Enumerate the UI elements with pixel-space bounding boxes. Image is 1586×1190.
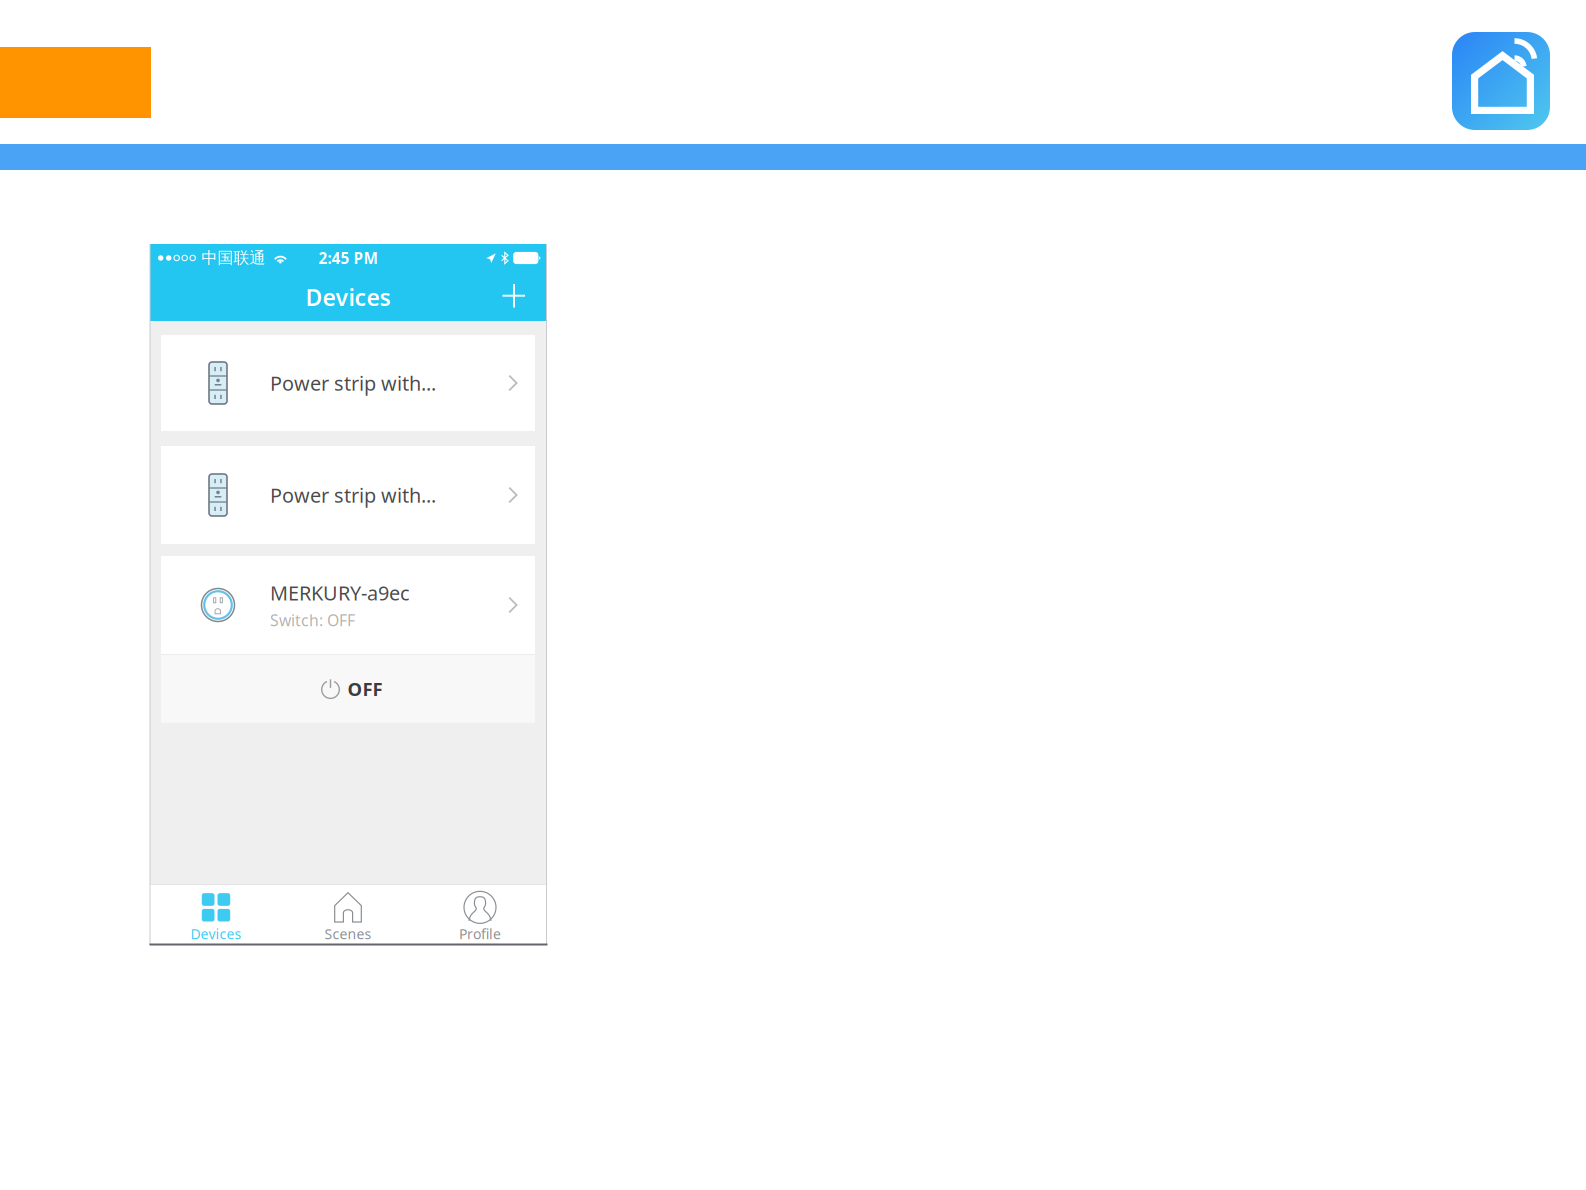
staticText: OFF — [347, 676, 382, 701]
button[interactable]: Devices — [150, 885, 282, 945]
staticText: 2:45 PM — [318, 248, 377, 268]
button[interactable]: MERKURY-a9ec — [161, 556, 535, 654]
staticText: Power strip with... — [270, 481, 436, 509]
staticText: Scenes — [324, 924, 371, 943]
button[interactable]: OFF — [161, 655, 535, 723]
button[interactable]: Power strip with... — [161, 335, 535, 431]
button[interactable]: Profile — [414, 885, 546, 945]
staticText: Power strip with... — [270, 369, 436, 397]
staticText: Devices — [190, 924, 241, 943]
staticText: Devices — [305, 281, 390, 313]
staticText: MERKURY-a9ec — [270, 579, 410, 606]
staticText: Switch: OFF — [270, 609, 355, 631]
button[interactable]: Scenes — [282, 885, 414, 945]
button[interactable]: Add device — [492, 276, 546, 320]
staticText: 中国联通 — [201, 248, 265, 268]
button[interactable]: Power strip with... — [161, 446, 535, 544]
staticText: Profile — [459, 924, 501, 943]
